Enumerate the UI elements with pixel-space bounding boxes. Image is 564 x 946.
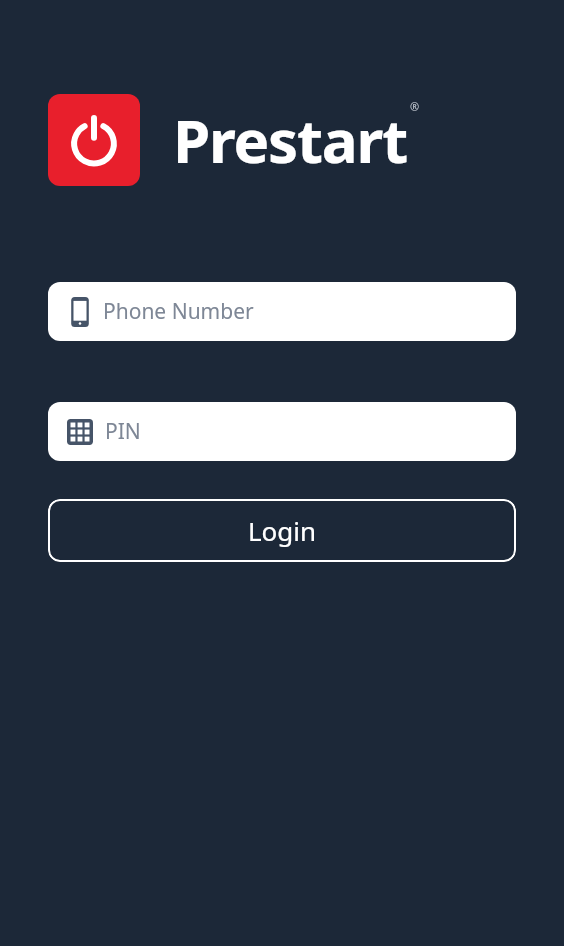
button[interactable]: Phone Number (48, 282, 516, 341)
staticText: Phone Number (103, 297, 254, 326)
button[interactable]: PIN (48, 402, 516, 461)
staticText: Login (248, 513, 317, 548)
staticText: PIN (105, 417, 141, 446)
staticText: ® (410, 99, 420, 114)
staticText: Prestart (173, 99, 408, 181)
button[interactable]: Login (48, 499, 516, 562)
